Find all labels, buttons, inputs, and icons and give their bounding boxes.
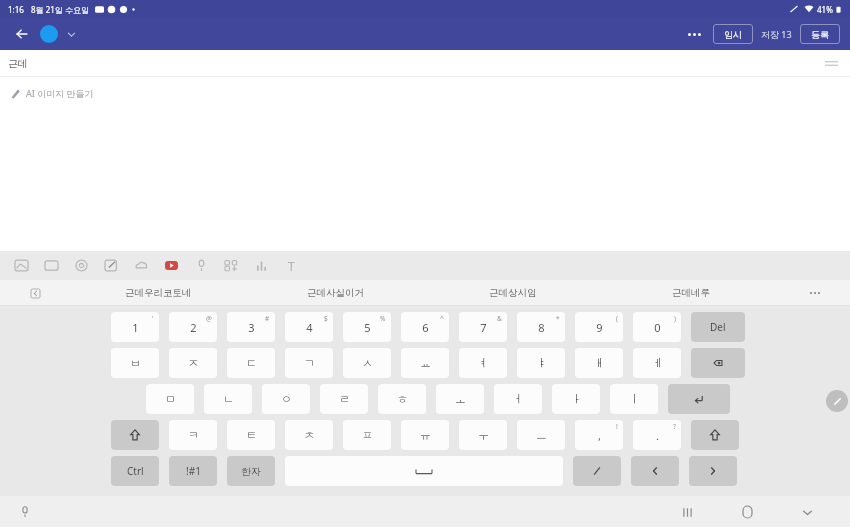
button[interactable]: Scan code [216,251,246,280]
button[interactable]: ㅏ [552,384,600,414]
staticText: T [288,258,295,274]
button[interactable]: !#1 [169,456,217,486]
button[interactable]: 1 [111,312,159,342]
button[interactable]: ㅊ [285,420,333,450]
button[interactable]: 근데상시임 [424,280,602,306]
button[interactable]: 3 [227,312,275,342]
staticText: . [656,428,659,443]
button[interactable]: Shift [111,420,159,450]
button[interactable]: 근데우리코토네 [70,280,247,306]
button[interactable]: Space [285,456,563,486]
button[interactable]: Insert card [36,251,66,280]
button[interactable]: AI 이미지 만들기 [10,87,94,99]
staticText: ㅜ [478,428,489,442]
staticText: Del [710,320,726,334]
button[interactable]: Enter [668,384,730,414]
staticText: ) [674,314,676,323]
button[interactable]: Backspace [691,348,745,378]
button[interactable]: ㄴ [204,384,252,414]
button[interactable]: Cloud [126,251,156,280]
button[interactable]: ㅎ [378,384,426,414]
button[interactable]: Language [573,456,621,486]
button[interactable]: Ctrl [111,456,159,486]
button[interactable]: 5 [343,312,391,342]
button[interactable]: Text format [276,251,306,280]
staticText: 근데우리코토네 [125,287,192,299]
button[interactable]: Insert image [6,251,36,280]
button[interactable]: ㅡ [517,420,565,450]
button[interactable]: Chart [246,251,276,280]
button[interactable]: 0 [633,312,681,342]
staticText: ㄹ [339,392,350,406]
button[interactable]: Expand [63,26,79,42]
staticText: ^ [440,314,444,323]
staticText: ? [673,422,676,431]
button[interactable]: 9 [575,312,623,342]
staticText: ㄴ [223,392,234,406]
staticText: ㅓ [513,392,524,406]
button[interactable]: ㅓ [494,384,542,414]
button[interactable]: Voice [186,251,216,280]
button[interactable]: ㄹ [320,384,368,414]
button[interactable]: ㅣ [610,384,658,414]
button[interactable]: 임시 [713,24,753,44]
button[interactable]: ㅇ [262,384,310,414]
button[interactable]: Handwriting [826,390,848,412]
button[interactable]: Previous [0,280,70,306]
button[interactable]: ㅔ [633,348,681,378]
button[interactable]: Shift [691,420,739,450]
button[interactable]: 등록 [800,24,840,44]
staticText: Ctrl [127,464,144,478]
button[interactable]: Settings [66,251,96,280]
staticText: 9 [596,320,603,335]
button[interactable]: ㅐ [575,348,623,378]
staticText: 3 [248,320,255,335]
button[interactable]: 8 [517,312,565,342]
button[interactable]: YouTube [156,251,186,280]
button[interactable]: ㅠ [401,420,449,450]
button[interactable]: Del [691,312,745,342]
button[interactable]: 2 [169,312,217,342]
button[interactable]: Back [10,22,34,46]
button[interactable]: ㅈ [169,348,217,378]
button[interactable]: ㅗ [436,384,484,414]
button[interactable]: 4 [285,312,333,342]
button[interactable]: Recents [672,497,702,527]
button[interactable]: , [575,420,623,450]
staticText: , [598,428,601,443]
button[interactable]: 근데네루 [602,280,780,306]
staticText: 임시 [724,29,742,40]
button[interactable]: Hide keyboard [792,497,822,527]
button[interactable]: Draw [96,251,126,280]
staticText: 6 [422,320,429,335]
button[interactable]: ㅛ [401,348,449,378]
button[interactable]: ㅌ [227,420,275,450]
button[interactable]: ㅑ [517,348,565,378]
button[interactable]: Profile [40,25,58,43]
staticText: 등록 [811,29,829,40]
button[interactable]: ㅂ [111,348,159,378]
button[interactable]: ㅅ [343,348,391,378]
button[interactable]: ㄱ [285,348,333,378]
button[interactable]: ㅜ [459,420,507,450]
button[interactable]: ㄷ [227,348,275,378]
button[interactable]: 한자 [227,456,275,486]
button[interactable]: 7 [459,312,507,342]
button[interactable]: . [633,420,681,450]
button[interactable]: ㅋ [169,420,217,450]
button[interactable]: Left [631,456,679,486]
button[interactable]: Right [689,456,737,486]
button[interactable]: More options [681,22,707,46]
button[interactable]: ㅕ [459,348,507,378]
button[interactable]: ㅍ [343,420,391,450]
staticText: ㅔ [652,356,663,370]
staticText: 0 [654,320,661,335]
button[interactable]: Menu [820,52,842,74]
button[interactable]: 6 [401,312,449,342]
button[interactable]: Home [732,497,762,527]
button[interactable]: ㅁ [146,384,194,414]
button[interactable]: More suggestions [780,280,850,306]
staticText: ㅐ [594,356,605,370]
button[interactable]: Voice input [14,501,36,523]
button[interactable]: 근데사실이거 [247,280,424,306]
